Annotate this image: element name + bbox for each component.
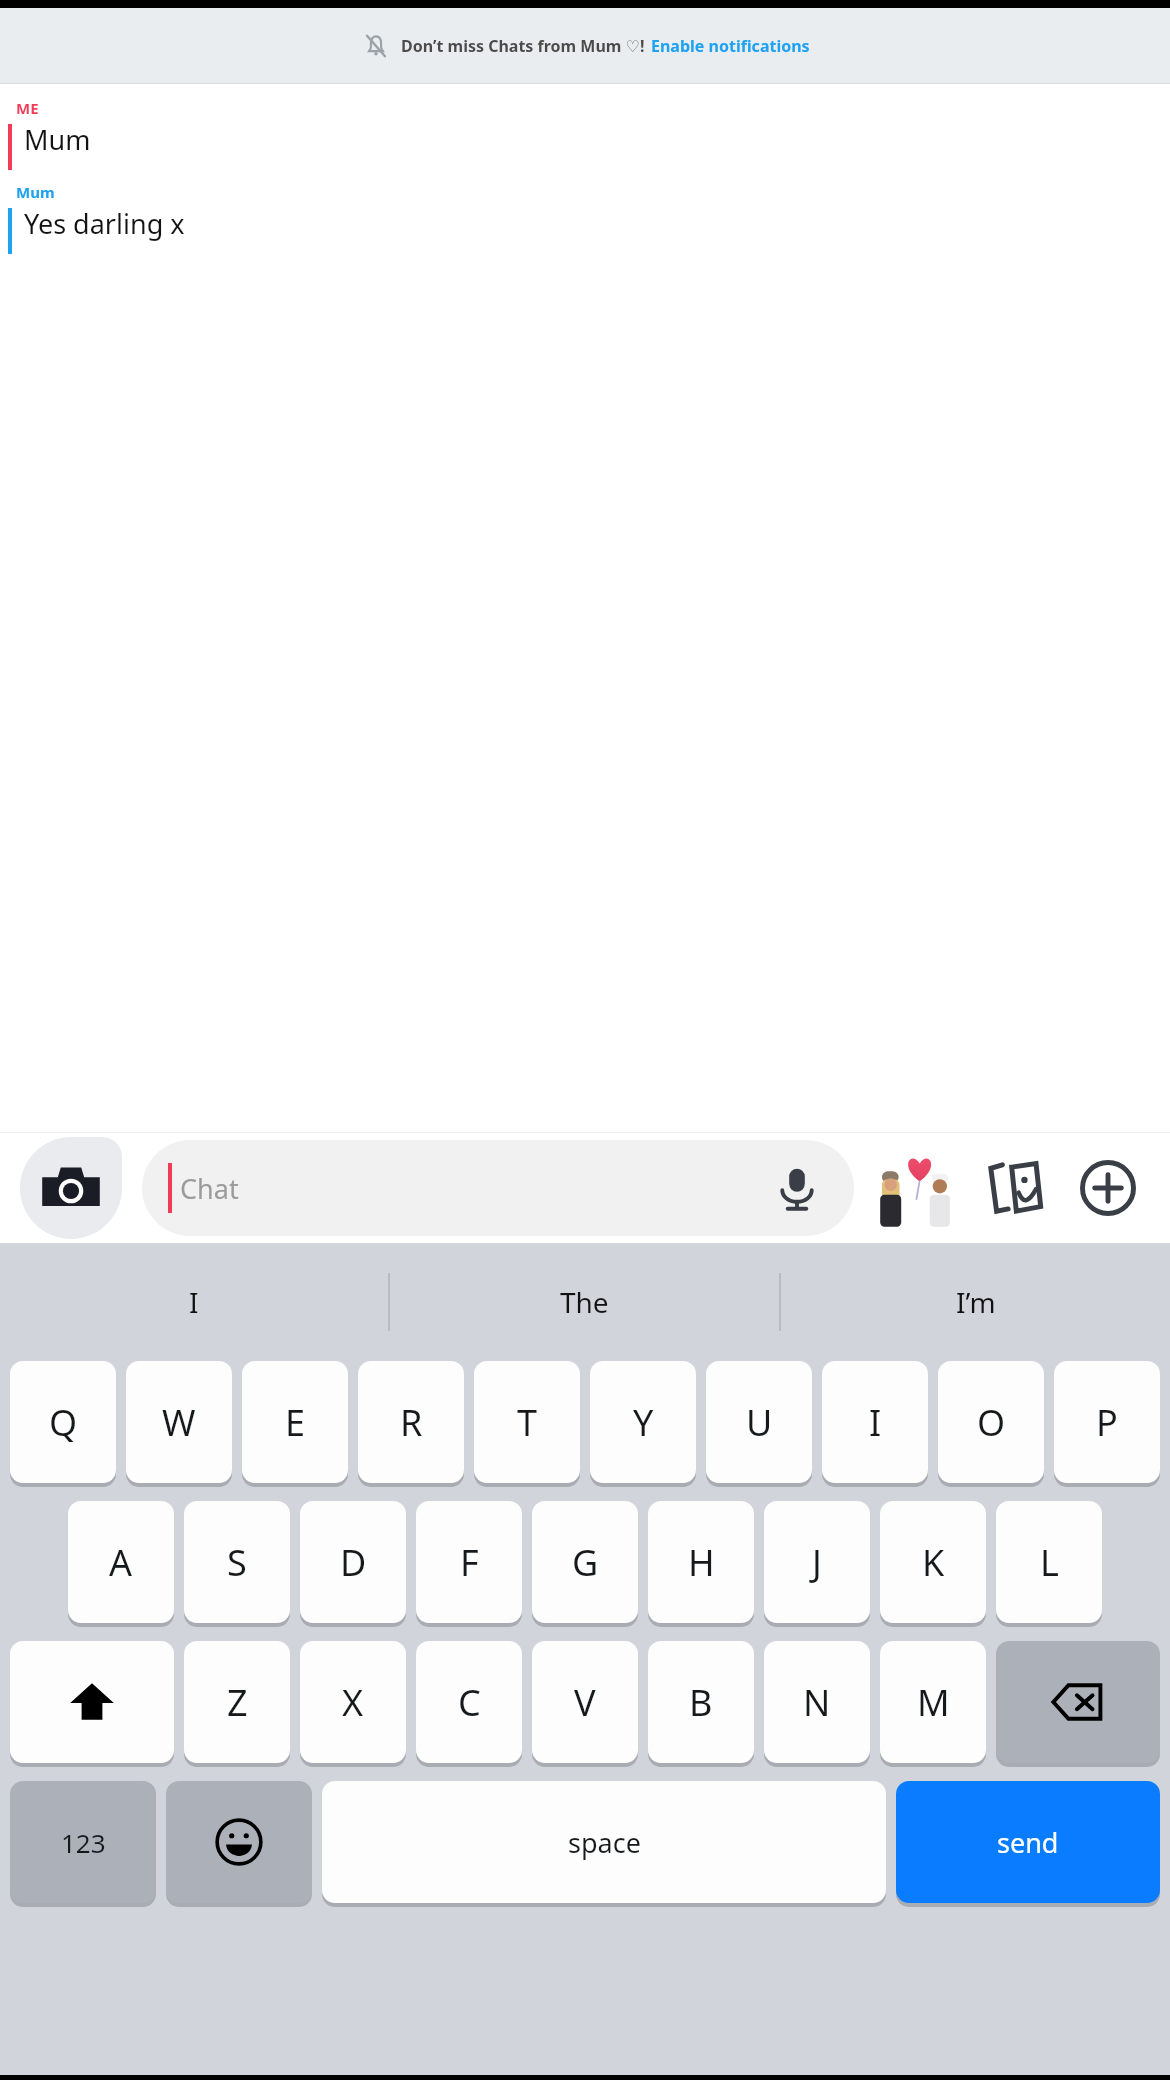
staticText: Mum bbox=[24, 121, 91, 158]
button[interactable]: D bbox=[300, 1501, 406, 1627]
button[interactable]: S bbox=[184, 1501, 290, 1627]
staticText: Z bbox=[227, 1678, 248, 1727]
button[interactable]: Z bbox=[184, 1641, 290, 1767]
button[interactable]: X bbox=[300, 1641, 406, 1767]
staticText: Y bbox=[633, 1398, 654, 1447]
staticText: Yes darling x bbox=[24, 205, 185, 242]
staticText: E bbox=[285, 1398, 306, 1447]
staticText: space bbox=[568, 1824, 641, 1861]
button[interactable]: B bbox=[648, 1641, 754, 1767]
button[interactable]: E bbox=[242, 1361, 348, 1487]
staticText: Don’t miss Chats from Mum ♡! bbox=[401, 35, 645, 57]
button[interactable]: Camera bbox=[20, 1137, 122, 1239]
staticText: A bbox=[109, 1538, 133, 1587]
staticText: R bbox=[400, 1398, 423, 1447]
button[interactable]: More options bbox=[1066, 1146, 1150, 1230]
staticText: I bbox=[189, 1283, 199, 1321]
button[interactable]: N bbox=[764, 1641, 870, 1767]
button[interactable]: K bbox=[880, 1501, 986, 1627]
button[interactable]: T bbox=[474, 1361, 580, 1487]
staticText: V bbox=[574, 1678, 596, 1727]
button[interactable]: M bbox=[880, 1641, 986, 1767]
button[interactable]: G bbox=[532, 1501, 638, 1627]
staticText: F bbox=[460, 1538, 479, 1587]
staticText: J bbox=[812, 1538, 822, 1587]
button[interactable]: Bitmoji sticker bbox=[870, 1140, 966, 1236]
staticText: ME bbox=[16, 98, 39, 118]
staticText: G bbox=[572, 1538, 599, 1587]
staticText: M bbox=[917, 1678, 950, 1727]
button[interactable]: P bbox=[1054, 1361, 1160, 1487]
staticText: Chat bbox=[180, 1170, 239, 1207]
button[interactable]: I bbox=[822, 1361, 928, 1487]
button[interactable]: Chat bbox=[142, 1140, 854, 1236]
button[interactable]: C bbox=[416, 1641, 522, 1767]
button[interactable]: Y bbox=[590, 1361, 696, 1487]
button[interactable]: W bbox=[126, 1361, 232, 1487]
staticText: H bbox=[688, 1538, 715, 1587]
button[interactable]: L bbox=[996, 1501, 1102, 1627]
button[interactable]: 123 bbox=[10, 1781, 156, 1907]
staticText: N bbox=[803, 1678, 831, 1727]
staticText: K bbox=[922, 1538, 945, 1587]
button[interactable]: F bbox=[416, 1501, 522, 1627]
button[interactable]: H bbox=[648, 1501, 754, 1627]
staticText: Enable notifications bbox=[651, 35, 810, 57]
button[interactable]: U bbox=[706, 1361, 812, 1487]
staticText: W bbox=[162, 1398, 196, 1447]
staticText: D bbox=[340, 1538, 367, 1587]
staticText: O bbox=[977, 1398, 1006, 1447]
staticText: I’m bbox=[956, 1283, 996, 1321]
staticText: L bbox=[1040, 1538, 1059, 1587]
staticText: Mum bbox=[16, 182, 55, 202]
staticText: T bbox=[517, 1398, 538, 1447]
staticText: S bbox=[227, 1538, 247, 1587]
button[interactable]: send bbox=[896, 1781, 1160, 1907]
button[interactable]: A bbox=[68, 1501, 174, 1627]
button[interactable]: V bbox=[532, 1641, 638, 1767]
button[interactable]: Emoji bbox=[166, 1781, 312, 1907]
staticText: X bbox=[342, 1678, 364, 1727]
button[interactable]: O bbox=[938, 1361, 1044, 1487]
button[interactable]: J bbox=[764, 1501, 870, 1627]
staticText: The bbox=[560, 1283, 609, 1321]
button[interactable]: I bbox=[0, 1243, 388, 1361]
button[interactable]: The bbox=[390, 1243, 779, 1361]
staticText: P bbox=[1096, 1398, 1118, 1447]
button[interactable]: Backspace bbox=[996, 1641, 1160, 1767]
button[interactable]: R bbox=[358, 1361, 464, 1487]
staticText: C bbox=[458, 1678, 481, 1727]
staticText: B bbox=[689, 1678, 713, 1727]
staticText: Q bbox=[49, 1398, 78, 1447]
button[interactable]: I’m bbox=[781, 1243, 1170, 1361]
staticText: U bbox=[746, 1398, 773, 1447]
button[interactable]: Q bbox=[10, 1361, 116, 1487]
staticText: 123 bbox=[61, 1825, 106, 1860]
button[interactable]: Stickers bbox=[972, 1146, 1056, 1230]
button[interactable]: Don’t miss Chats from Mum ♡! bbox=[0, 8, 1170, 83]
button[interactable]: space bbox=[322, 1781, 886, 1907]
staticText: I bbox=[869, 1398, 882, 1447]
staticText: send bbox=[997, 1824, 1059, 1861]
button[interactable]: Shift bbox=[10, 1641, 174, 1767]
